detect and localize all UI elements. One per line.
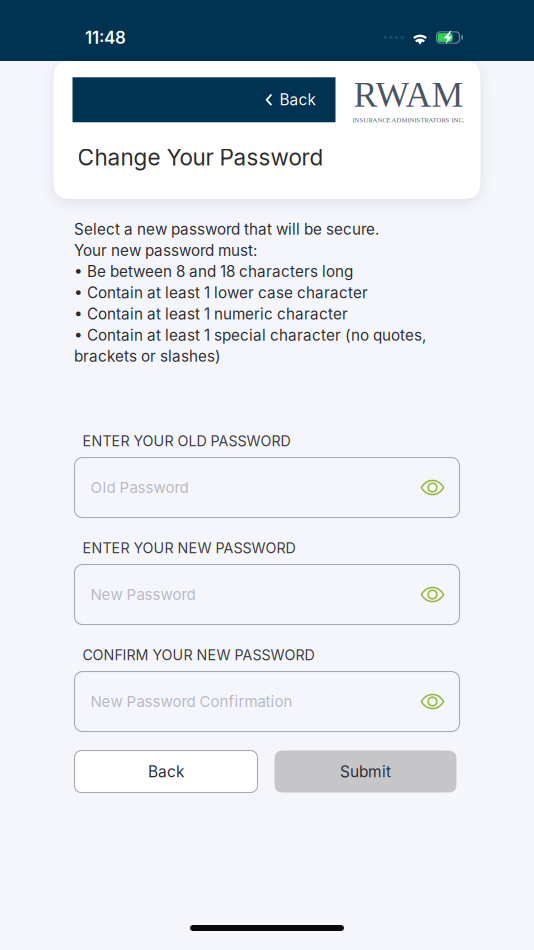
button[interactable]: Back	[74, 750, 257, 792]
staticText: • Contain at least 1 numeric character	[74, 305, 348, 323]
staticText: ENTER YOUR OLD PASSWORD	[82, 432, 290, 450]
staticText: • Be between 8 and 18 characters long	[74, 262, 353, 281]
staticText: ENTER YOUR NEW PASSWORD	[82, 539, 295, 557]
button[interactable]: New Password Confirmation	[74, 671, 459, 731]
staticText: Old Password	[90, 478, 188, 497]
staticText: 11:48	[85, 27, 126, 48]
button[interactable]: Submit	[274, 750, 456, 792]
staticText: Select a new password that will be secur…	[74, 220, 379, 238]
staticText: INSURANCE ADMINISTRATORS INC.	[352, 116, 464, 124]
staticText: Back	[148, 762, 184, 781]
staticText: brackets or slashes)	[74, 347, 221, 365]
staticText: CONFIRM YOUR NEW PASSWORD	[82, 646, 314, 664]
staticText: RWAM	[353, 75, 463, 115]
staticText: New Password Confirmation	[90, 692, 292, 711]
button[interactable]: Old Password	[74, 457, 459, 517]
staticText: Change Your Password	[77, 144, 323, 171]
staticText: New Password	[90, 585, 195, 604]
staticText: • Contain at least 1 lower case characte…	[74, 284, 368, 302]
button[interactable]: New Password	[74, 564, 459, 624]
staticText: Back	[279, 90, 315, 109]
staticText: Submit	[340, 762, 391, 781]
staticText: • Contain at least 1 special character (…	[74, 326, 426, 344]
button[interactable]: Back	[72, 77, 335, 122]
staticText: Your new password must:	[74, 241, 257, 260]
